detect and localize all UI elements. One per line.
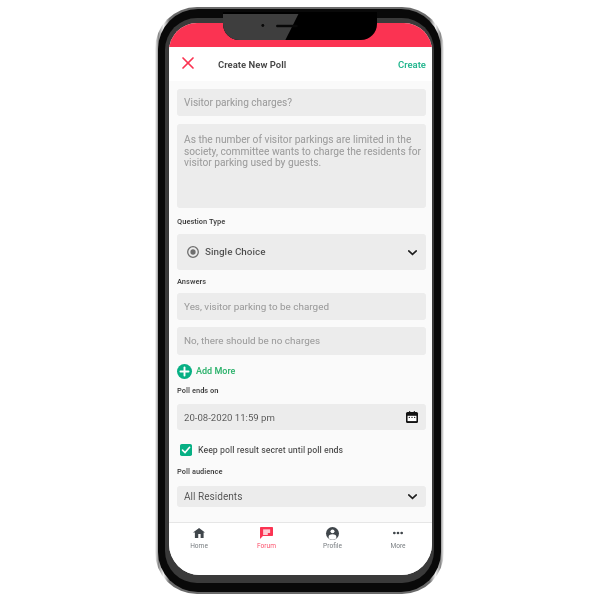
button[interactable]: Visitor parking charges? bbox=[177, 89, 426, 116]
staticText: No, there should be no charges bbox=[184, 335, 321, 347]
button[interactable]: Yes, visitor parking to be charged bbox=[177, 293, 426, 320]
staticText: All Residents bbox=[184, 491, 243, 503]
button[interactable]: Keep poll result secret until poll ends bbox=[180, 441, 344, 458]
button[interactable]: No, there should be no charges bbox=[177, 327, 426, 355]
staticText: Forum bbox=[257, 542, 276, 550]
button[interactable]: Single Choice bbox=[177, 234, 426, 270]
other: Expand bbox=[408, 492, 417, 501]
staticText: 20-08-2020 11:59 pm bbox=[184, 412, 275, 423]
staticText: Question Type bbox=[177, 217, 226, 226]
staticText: As the number of visitor parkings are li… bbox=[184, 134, 425, 169]
staticText: Answers bbox=[177, 277, 207, 286]
staticText: Poll audience bbox=[177, 467, 223, 476]
button[interactable]: Create bbox=[392, 53, 432, 76]
button[interactable]: Home bbox=[173, 526, 225, 558]
staticText: Yes, visitor parking to be charged bbox=[184, 301, 329, 313]
staticText: Home bbox=[190, 542, 208, 550]
staticText: Profile bbox=[323, 542, 342, 550]
button[interactable]: 20-08-2020 11:59 pm bbox=[177, 404, 426, 430]
button[interactable]: Profile bbox=[306, 526, 358, 558]
staticText: Visitor parking charges? bbox=[184, 97, 292, 109]
button[interactable]: As the number of visitor parkings are li… bbox=[177, 124, 426, 208]
other: Expand bbox=[408, 248, 417, 257]
staticText: Keep poll result secret until poll ends bbox=[198, 445, 344, 455]
button[interactable]: Close bbox=[177, 52, 199, 74]
staticText: More bbox=[390, 542, 406, 550]
button[interactable]: More bbox=[372, 526, 424, 558]
button[interactable]: Add More bbox=[177, 363, 236, 379]
staticText: Create bbox=[398, 59, 426, 70]
staticText: Single Choice bbox=[205, 246, 266, 258]
button[interactable]: All Residents bbox=[177, 486, 426, 507]
button[interactable]: Forum bbox=[240, 526, 292, 558]
staticText: Create New Poll bbox=[218, 59, 287, 70]
staticText: Add More bbox=[196, 366, 236, 377]
staticText: Poll ends on bbox=[177, 386, 219, 395]
other: Pick date bbox=[406, 411, 418, 423]
